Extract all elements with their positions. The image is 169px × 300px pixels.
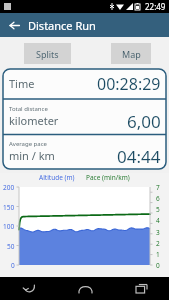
staticText: 6,00 [127,110,161,133]
button[interactable]: Back [0,277,57,300]
staticText: Pace (min/km) [86,173,130,182]
button[interactable]: Average pace [3,134,166,169]
staticText: 3 [156,228,160,237]
staticText: 0 [11,261,15,270]
button[interactable]: Home [57,277,113,300]
staticText: Splits [36,48,59,60]
button[interactable]: Total distance [3,98,166,134]
staticText: Total distance [9,105,48,113]
staticText: Distance Run [28,18,96,33]
staticText: 0 [156,261,160,270]
staticText: 6 [156,194,160,203]
staticText: 2 [156,239,160,248]
staticText: 22:49 [145,1,166,12]
staticText: 50 [7,242,15,251]
staticText: Altitude (m) [39,173,75,182]
button[interactable]: Splits [24,43,71,64]
staticText: kilometer [9,113,59,128]
staticText: min / km [9,148,55,163]
staticText: Time [9,76,35,91]
staticText: 00:28:29 [97,73,161,95]
staticText: 1 [156,250,160,259]
staticText: Average pace [9,140,47,148]
button[interactable]: Recent apps [113,277,169,300]
staticText: 04:44 [117,145,161,168]
button[interactable]: Navigate up [0,13,28,37]
staticText: Map [122,48,141,60]
staticText: 150 [3,203,15,212]
staticText: 4 [156,216,160,225]
staticText: 100 [3,222,15,231]
button[interactable]: Time [3,69,166,98]
staticText: 5 [156,205,160,214]
staticText: 7 [156,183,160,192]
staticText: 200 [3,183,15,192]
button[interactable]: Map [111,43,151,64]
